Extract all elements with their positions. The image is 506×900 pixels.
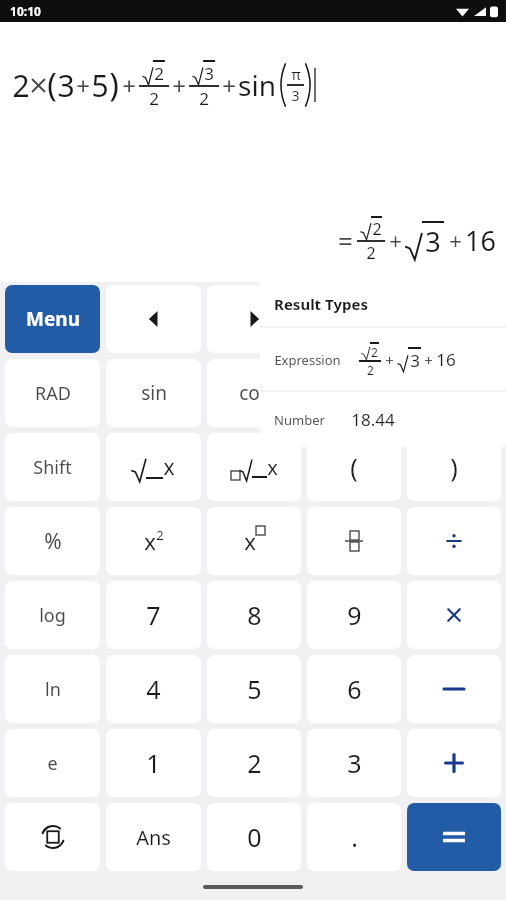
button[interactable]: cos bbox=[207, 359, 301, 427]
staticText: + bbox=[424, 350, 433, 370]
button[interactable]: Square root bbox=[106, 433, 201, 501]
button[interactable]: Minus bbox=[407, 655, 501, 723]
button[interactable]: 0 bbox=[207, 803, 301, 871]
button[interactable]: sin bbox=[106, 359, 201, 427]
staticText: 2 bbox=[149, 87, 159, 110]
staticText: 3 bbox=[347, 746, 362, 780]
staticText: 1 bbox=[146, 746, 161, 780]
staticText: 2 bbox=[372, 218, 382, 240]
staticText: ( bbox=[47, 63, 57, 107]
staticText: Number bbox=[274, 411, 325, 429]
button[interactable]: 5 bbox=[207, 655, 301, 723]
button[interactable]: Plus bbox=[407, 729, 501, 797]
staticText: 4 bbox=[146, 672, 161, 706]
button[interactable]: Multiply bbox=[407, 581, 501, 649]
staticText: = bbox=[338, 223, 353, 258]
button[interactable]: 4 bbox=[106, 655, 201, 723]
button[interactable]: Number bbox=[260, 392, 506, 447]
button[interactable]: 8 bbox=[207, 581, 301, 649]
staticText: 16 bbox=[436, 348, 456, 371]
staticText: x bbox=[244, 526, 256, 556]
staticText: DEL bbox=[339, 308, 370, 331]
staticText: 3 bbox=[204, 62, 214, 85]
button[interactable]: 3 bbox=[307, 729, 401, 797]
staticText: Expression bbox=[274, 351, 341, 369]
button[interactable]: ( bbox=[307, 433, 401, 501]
staticText: x bbox=[267, 454, 278, 481]
staticText: cos bbox=[239, 380, 269, 406]
staticText: Ans bbox=[136, 824, 171, 851]
staticText: + bbox=[76, 69, 90, 102]
staticText: 0 bbox=[247, 820, 262, 854]
staticText: Result Types bbox=[274, 294, 368, 314]
button[interactable]: Rotate screen bbox=[5, 803, 100, 871]
button[interactable]: Ans bbox=[106, 803, 201, 871]
staticText: 2 bbox=[247, 746, 262, 780]
staticText: + bbox=[172, 69, 186, 102]
staticText: log bbox=[39, 603, 66, 628]
button[interactable]: Equals bbox=[407, 803, 501, 871]
staticText: 2 bbox=[156, 526, 164, 544]
button[interactable]: tan bbox=[307, 359, 401, 427]
button[interactable]: Menu bbox=[5, 285, 100, 353]
staticText: 2 bbox=[367, 362, 374, 378]
staticText: + bbox=[389, 225, 402, 255]
button[interactable]: Divide bbox=[407, 507, 501, 575]
staticText: 2 bbox=[12, 65, 30, 106]
staticText: + bbox=[122, 69, 136, 102]
button[interactable]: x squared bbox=[106, 507, 201, 575]
button[interactable]: e bbox=[5, 729, 100, 797]
button[interactable]: log bbox=[5, 581, 100, 649]
button[interactable]: . bbox=[307, 803, 401, 871]
staticText: x bbox=[144, 526, 156, 556]
button[interactable]: 6 bbox=[307, 655, 401, 723]
staticText: 16 bbox=[465, 222, 496, 259]
staticText: 9 bbox=[347, 598, 362, 632]
staticText: sin bbox=[141, 380, 167, 406]
staticText: 3 bbox=[410, 349, 420, 372]
button[interactable]: n! bbox=[407, 359, 501, 427]
button[interactable]: Fraction bbox=[307, 507, 401, 575]
staticText: Shift bbox=[33, 455, 72, 480]
staticText: ) bbox=[109, 63, 119, 107]
staticText: x bbox=[163, 453, 175, 482]
staticText: Menu bbox=[26, 306, 80, 332]
staticText: tan bbox=[339, 380, 369, 406]
staticText: ( bbox=[350, 450, 358, 484]
button[interactable]: Move cursor left bbox=[106, 285, 201, 353]
staticText: 8 bbox=[247, 598, 262, 632]
staticText: 18.44 bbox=[351, 408, 395, 431]
staticText: RAD bbox=[35, 381, 71, 406]
button[interactable]: ln bbox=[5, 655, 100, 723]
staticText: ) bbox=[450, 450, 458, 484]
button[interactable]: Nth root bbox=[207, 433, 301, 501]
button[interactable]: AC bbox=[407, 285, 501, 353]
button[interactable]: Shift bbox=[5, 433, 100, 501]
button[interactable]: 2 bbox=[207, 729, 301, 797]
staticText: 5 bbox=[247, 672, 262, 706]
button[interactable]: RAD bbox=[5, 359, 100, 427]
staticText: 2 bbox=[371, 344, 378, 360]
staticText: % bbox=[44, 527, 62, 556]
staticText: AC bbox=[443, 308, 465, 331]
staticText: e bbox=[47, 751, 58, 776]
staticText: 2 bbox=[154, 62, 164, 85]
button[interactable]: 9 bbox=[307, 581, 401, 649]
button[interactable]: Expression bbox=[260, 328, 506, 391]
button[interactable]: x to the power bbox=[207, 507, 301, 575]
button[interactable]: 1 bbox=[106, 729, 201, 797]
button[interactable]: % bbox=[5, 507, 100, 575]
staticText: + bbox=[449, 225, 462, 255]
button[interactable]: ) bbox=[407, 433, 501, 501]
staticText: + bbox=[385, 350, 394, 370]
button[interactable]: Move cursor right bbox=[207, 285, 301, 353]
staticText: 3 bbox=[57, 65, 75, 106]
staticText: . bbox=[351, 820, 358, 854]
staticText: 2 bbox=[199, 87, 209, 110]
button[interactable]: 7 bbox=[106, 581, 201, 649]
staticText: π bbox=[291, 65, 301, 84]
staticText: 6 bbox=[347, 672, 362, 706]
staticText: ln bbox=[45, 677, 61, 702]
button[interactable]: DEL bbox=[307, 285, 401, 353]
staticText: sin bbox=[238, 66, 276, 104]
